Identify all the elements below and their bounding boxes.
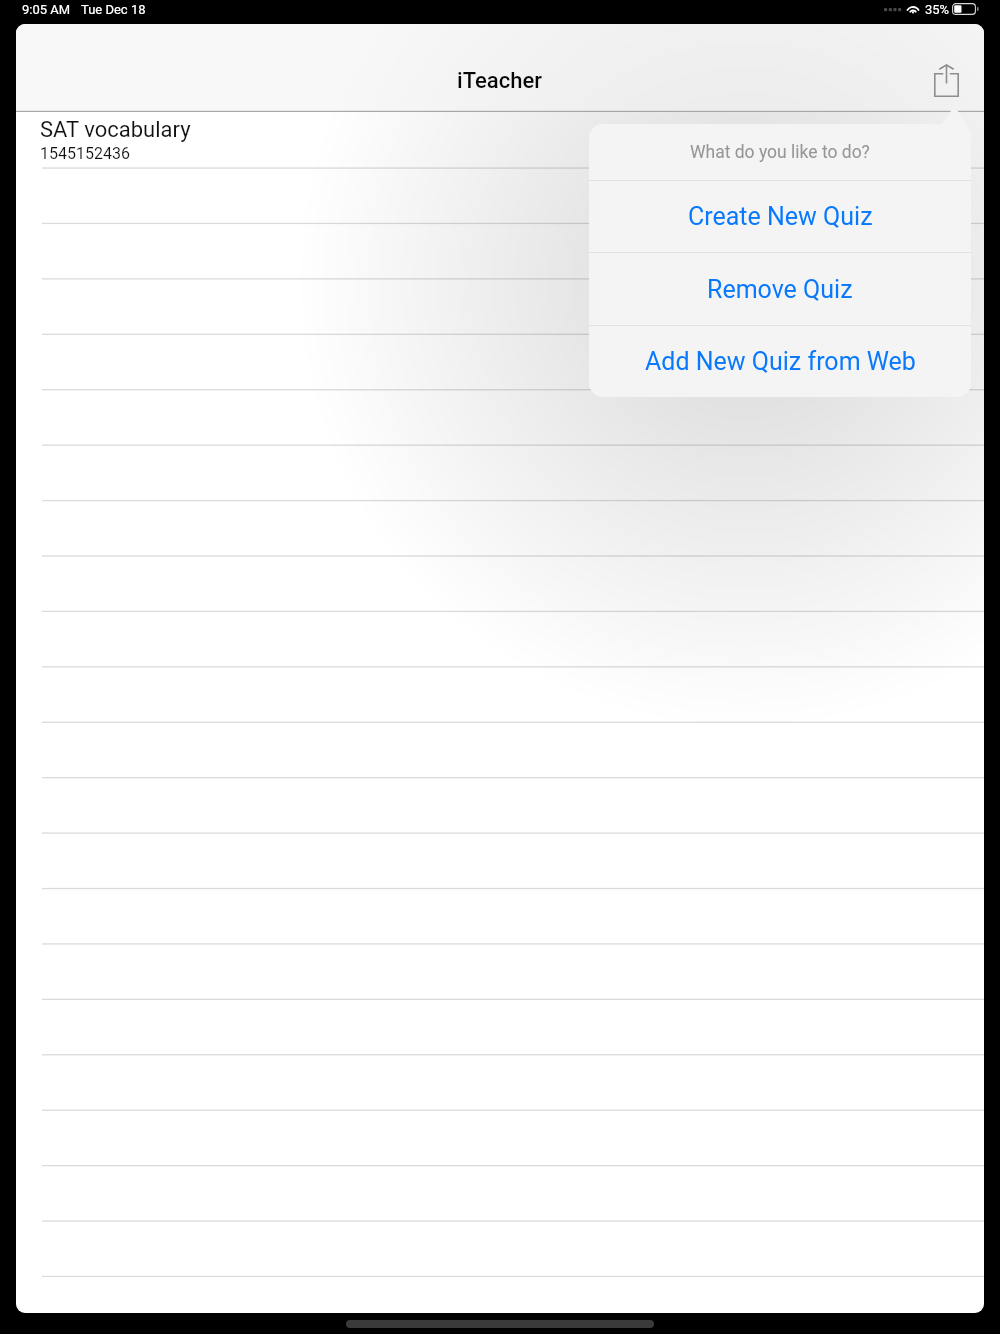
button[interactable]: Create New Quiz [589, 181, 971, 252]
button[interactable] [16, 552, 984, 607]
button[interactable] [16, 167, 984, 222]
staticText: SAT vocabulary [40, 117, 191, 143]
button[interactable] [16, 497, 984, 552]
button[interactable] [16, 442, 984, 497]
button[interactable] [16, 827, 984, 882]
button[interactable] [16, 937, 984, 992]
button[interactable]: Share [917, 46, 975, 104]
button[interactable] [16, 277, 984, 332]
staticText: 35% [925, 2, 950, 17]
button[interactable] [16, 662, 984, 717]
button[interactable]: Remove Quiz [589, 253, 971, 325]
staticText: 1545152436 [40, 144, 130, 163]
staticText: Add New Quiz from Web [645, 347, 916, 376]
button[interactable] [16, 607, 984, 662]
staticText: iTeacher [457, 68, 543, 94]
button[interactable] [16, 387, 984, 442]
staticText: 9:05 AM [22, 2, 71, 17]
button[interactable] [16, 1102, 984, 1157]
button[interactable]: Add New Quiz from Web [589, 326, 971, 397]
staticText: Create New Quiz [688, 202, 873, 231]
button[interactable] [16, 112, 984, 167]
button[interactable] [16, 1212, 984, 1267]
staticText: What do you like to do? [690, 142, 870, 163]
button[interactable] [16, 992, 984, 1047]
staticText: Tue Dec 18 [81, 2, 146, 17]
button[interactable] [16, 882, 984, 937]
button[interactable] [16, 1047, 984, 1102]
button[interactable] [16, 222, 984, 277]
button[interactable] [16, 772, 984, 827]
button[interactable] [16, 717, 984, 772]
staticText: Remove Quiz [707, 275, 853, 304]
button[interactable] [16, 1157, 984, 1212]
button[interactable] [16, 332, 984, 387]
